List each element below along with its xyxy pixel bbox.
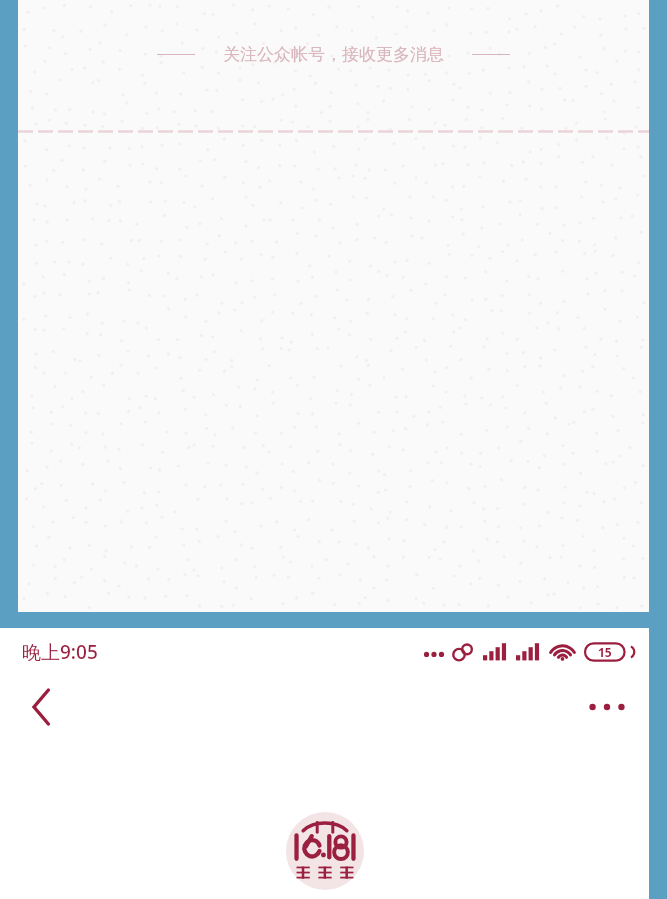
button[interactable]: Back (14, 679, 70, 735)
staticText: 关注公众帐号，接收更多消息 (223, 44, 444, 65)
button[interactable]: More options (579, 679, 635, 735)
staticText: 晚上9:05 (22, 639, 98, 665)
staticText: 15 (598, 644, 612, 660)
